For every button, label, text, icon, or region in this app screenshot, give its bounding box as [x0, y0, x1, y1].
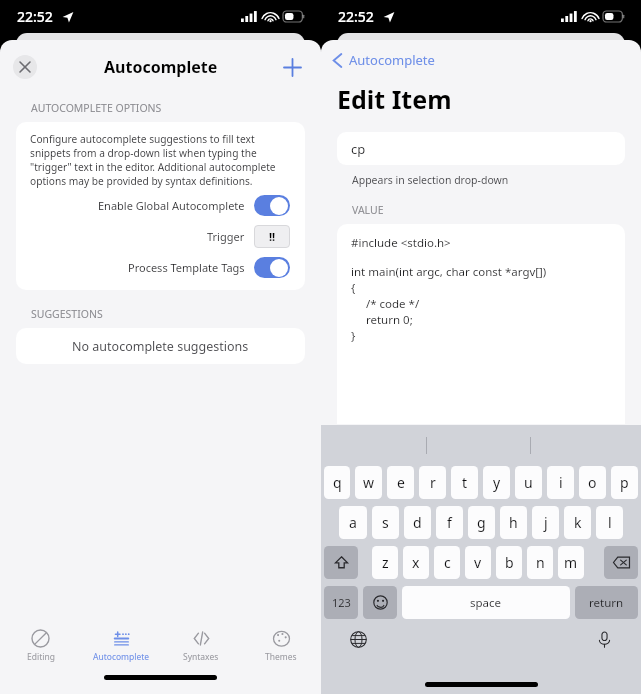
button[interactable]: a — [339, 506, 367, 539]
staticText: !! — [269, 229, 276, 244]
button[interactable]: !! — [254, 225, 290, 248]
button[interactable]: Autocomplete — [81, 620, 161, 672]
staticText: No autocomplete suggestions — [72, 338, 249, 355]
button[interactable]: z — [372, 546, 398, 579]
button[interactable]: Add — [275, 50, 309, 84]
button[interactable]: Process Template Tags — [16, 252, 305, 283]
staticText: l — [608, 513, 612, 532]
button[interactable]: c — [434, 546, 460, 579]
button[interactable]: n — [527, 546, 553, 579]
staticText: v — [474, 553, 482, 572]
button[interactable]: h — [500, 506, 527, 539]
staticText: r — [430, 473, 436, 492]
button[interactable]: t — [451, 466, 478, 499]
staticText: b — [505, 553, 514, 572]
button[interactable]: o — [579, 466, 606, 499]
button[interactable]: Emoji — [363, 586, 397, 619]
button[interactable]: 123 — [324, 586, 358, 619]
button[interactable]: Themes — [241, 620, 321, 672]
button[interactable]: u — [515, 466, 542, 499]
button[interactable]: q — [324, 466, 350, 499]
staticText: Syntaxes — [183, 651, 219, 663]
button[interactable]: m — [558, 546, 584, 579]
staticText: { — [351, 280, 356, 296]
staticText: Configure autocomplete suggestions to fi… — [30, 132, 292, 188]
staticText: i — [559, 473, 563, 492]
button[interactable]: y — [483, 466, 510, 499]
staticText: Edit Item — [337, 82, 452, 116]
button[interactable]: Dictation — [594, 629, 614, 649]
staticText: Themes — [265, 651, 297, 663]
staticText: Process Template Tags — [128, 260, 245, 275]
button[interactable]: Backspace — [604, 546, 638, 579]
button[interactable]: l — [596, 506, 623, 539]
staticText: cp — [351, 140, 366, 158]
staticText: c — [444, 553, 451, 572]
staticText: z — [382, 553, 389, 572]
staticText: e — [397, 473, 405, 492]
staticText: space — [470, 595, 502, 611]
staticText: p — [620, 473, 629, 492]
button[interactable]: e — [387, 466, 414, 499]
button[interactable]: r — [419, 466, 446, 499]
button[interactable]: j — [532, 506, 559, 539]
staticText: q — [333, 473, 342, 492]
staticText: 22:52 — [338, 7, 374, 26]
button[interactable]: No autocomplete suggestions — [16, 328, 305, 364]
staticText: } — [351, 328, 356, 344]
button[interactable]: Syntaxes — [161, 620, 241, 672]
button[interactable]: i — [547, 466, 574, 499]
staticText: 123 — [332, 595, 351, 610]
staticText: k — [574, 513, 582, 532]
button[interactable]: b — [496, 546, 522, 579]
staticText: d — [413, 513, 422, 532]
button[interactable]: g — [468, 506, 495, 539]
button[interactable] — [254, 257, 290, 278]
staticText: t — [462, 473, 468, 492]
button[interactable]: x — [403, 546, 429, 579]
button[interactable]: space — [402, 586, 570, 619]
staticText: Autocomplete — [349, 51, 435, 69]
button[interactable]: s — [372, 506, 399, 539]
button[interactable]: d — [404, 506, 431, 539]
staticText: SUGGESTIONS — [31, 307, 103, 321]
button[interactable]: #include <stdio.h> — [337, 224, 625, 424]
button[interactable] — [254, 195, 290, 216]
staticText: u — [524, 473, 533, 492]
button[interactable]: cp — [337, 132, 625, 165]
button[interactable]: p — [611, 466, 638, 499]
button[interactable]: Editing — [0, 620, 81, 672]
staticText: Editing — [27, 651, 55, 663]
staticText: return — [589, 595, 624, 611]
staticText: o — [588, 473, 597, 492]
staticText: h — [509, 513, 518, 532]
button[interactable]: return — [575, 586, 638, 619]
button[interactable]: Change keyboard — [348, 629, 368, 649]
staticText: AUTOCOMPLETE OPTIONS — [31, 101, 162, 115]
staticText: f — [447, 513, 452, 532]
staticText: 22:52 — [17, 7, 53, 26]
staticText: g — [477, 513, 486, 532]
button[interactable]: Trigger — [16, 221, 305, 252]
button[interactable]: Enable Global Autocomplete — [16, 190, 305, 221]
staticText: x — [412, 553, 420, 572]
staticText: s — [382, 513, 389, 532]
button[interactable]: k — [564, 506, 591, 539]
staticText: y — [493, 473, 501, 492]
staticText: #include <stdio.h> — [351, 235, 451, 251]
staticText: VALUE — [352, 203, 384, 217]
staticText: Trigger — [207, 229, 245, 244]
staticText: Enable Global Autocomplete — [98, 198, 245, 213]
button[interactable]: Shift — [324, 546, 358, 579]
staticText: n — [536, 553, 545, 572]
button[interactable]: Autocomplete — [321, 40, 641, 80]
button[interactable]: f — [436, 506, 463, 539]
staticText: Autocomplete — [93, 651, 150, 663]
staticText: a — [349, 513, 357, 532]
button[interactable]: v — [465, 546, 491, 579]
staticText: Appears in selection drop-down — [352, 173, 509, 187]
button[interactable]: Close — [13, 55, 37, 79]
staticText: w — [363, 473, 375, 492]
button[interactable]: w — [355, 466, 382, 499]
staticText: int main(int argc, char const *argv[]) — [351, 264, 547, 280]
